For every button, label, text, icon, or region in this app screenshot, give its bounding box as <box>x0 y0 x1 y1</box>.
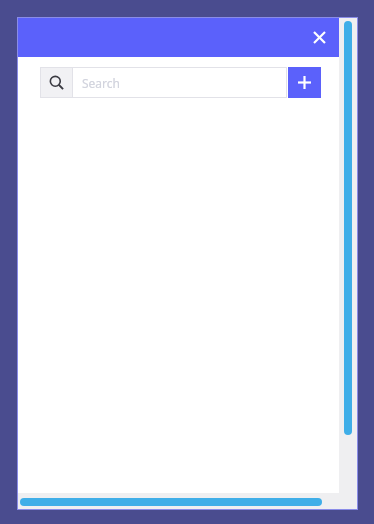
button[interactable]: Close <box>305 23 333 51</box>
button[interactable]: Search <box>40 67 287 98</box>
button[interactable]: Vertical scrollbar <box>339 17 358 493</box>
button[interactable]: Horizontal scrollbar <box>17 493 358 510</box>
button[interactable]: Add <box>288 67 321 98</box>
staticText: Search <box>82 75 120 91</box>
